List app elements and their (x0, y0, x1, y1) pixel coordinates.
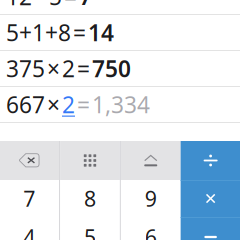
button[interactable]: 5+1+8 = (0, 15, 240, 50)
button[interactable]: Multiply (181, 180, 240, 217)
button[interactable]: 12 − 5 = (0, 0, 240, 14)
button[interactable]: 4 (0, 217, 59, 240)
staticText: 8 (84, 184, 96, 213)
staticText: 7 (79, 0, 92, 11)
button[interactable]: Divide (181, 141, 240, 180)
button[interactable]: Hide keyboard (121, 141, 181, 180)
staticText: 667 × (6, 89, 62, 119)
button[interactable]: 9 (121, 180, 181, 217)
staticText: 9 (145, 184, 157, 213)
staticText: 5 (84, 223, 96, 240)
button[interactable]: Delete (0, 141, 59, 180)
staticText: 6 (145, 223, 157, 240)
button[interactable]: 8 (60, 180, 120, 217)
button[interactable]: Subtract (181, 217, 240, 240)
button[interactable]: 375 × 2 = (0, 51, 240, 86)
staticText: 4 (23, 223, 35, 240)
staticText: 7 (23, 184, 35, 213)
button[interactable]: 6 (121, 217, 181, 240)
button[interactable]: 667 × (0, 87, 240, 122)
button[interactable]: 5 (60, 217, 120, 240)
staticText: 12 − 5 = (6, 0, 79, 11)
staticText: 750 (92, 53, 131, 83)
button[interactable]: Number pad (60, 141, 120, 180)
button[interactable]: 7 (0, 180, 59, 217)
staticText: = 1,334 (75, 89, 150, 119)
staticText: 5+1+8 = (6, 17, 88, 47)
staticText: 2 (62, 89, 75, 119)
staticText: 375 × 2 = (6, 53, 92, 83)
staticText: 14 (88, 17, 114, 47)
